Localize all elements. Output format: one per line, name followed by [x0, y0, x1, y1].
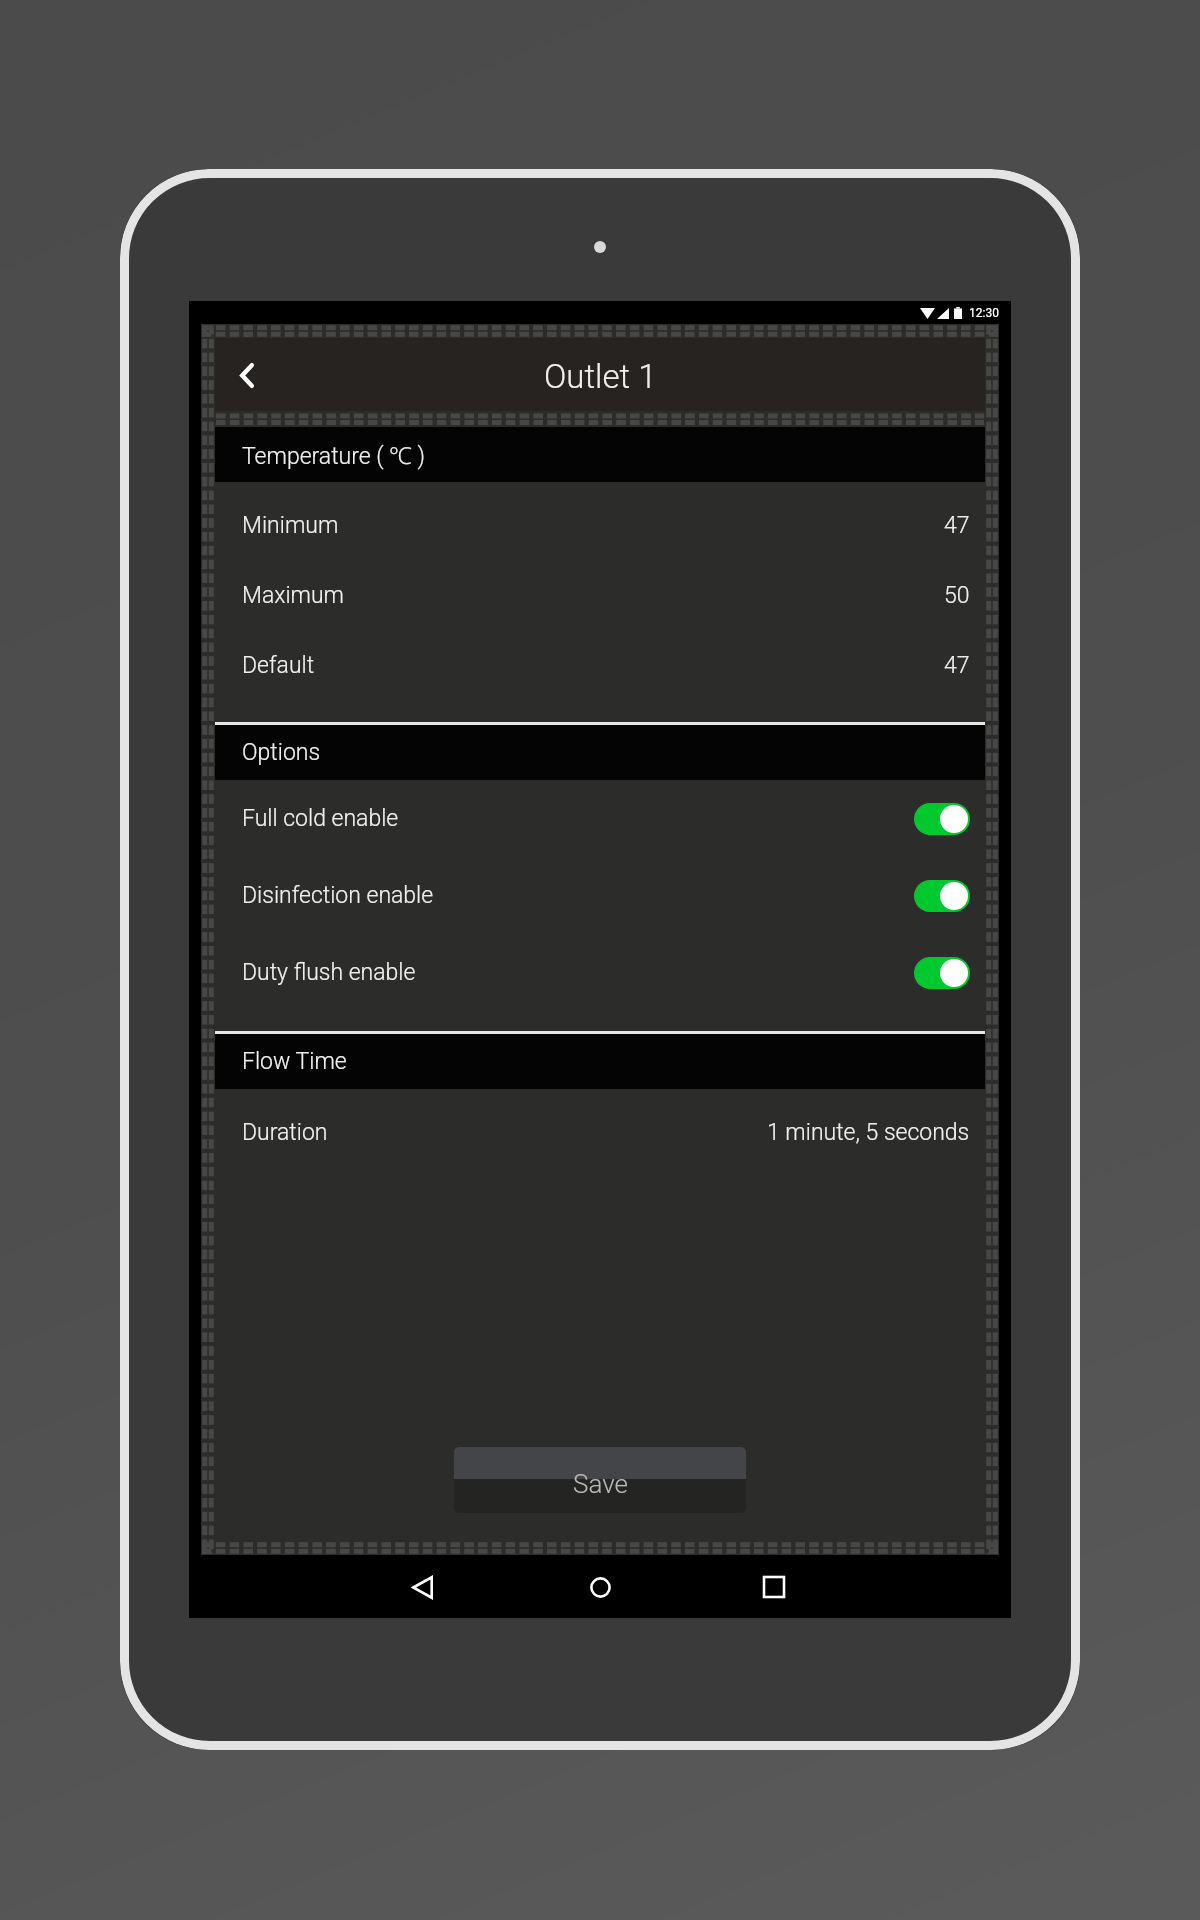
staticText: Default	[242, 652, 315, 679]
staticText: 50	[944, 582, 970, 609]
button[interactable]: Home	[572, 1559, 628, 1615]
staticText: 1 minute, 5 seconds	[767, 1119, 970, 1146]
button[interactable]: Save	[454, 1447, 746, 1513]
staticText: Save	[573, 1469, 628, 1499]
staticText: Minimum	[242, 512, 339, 539]
staticText: 12:30	[969, 306, 999, 320]
button[interactable]: Full cold enable	[215, 780, 985, 857]
staticText: Full cold enable	[242, 805, 399, 832]
button[interactable]: Back	[215, 338, 985, 411]
button[interactable]: Back	[221, 349, 273, 401]
staticText: 47	[944, 652, 970, 679]
button[interactable]: Duty flush enable	[215, 934, 985, 1011]
staticText: Flow Time	[242, 1048, 347, 1075]
staticText: Outlet 1	[544, 357, 657, 396]
button[interactable]: Back	[394, 1559, 450, 1615]
staticText: Disinfection enable	[242, 882, 434, 909]
button[interactable]: Duration	[215, 1097, 985, 1167]
staticText: Duration	[242, 1119, 328, 1146]
button[interactable]: Default	[215, 630, 985, 700]
staticText: Options	[242, 739, 321, 766]
button[interactable]: Recents	[746, 1559, 802, 1615]
staticText: 47	[944, 512, 970, 539]
staticText: Duty flush enable	[242, 959, 416, 986]
button[interactable]: Maximum	[215, 560, 985, 630]
button[interactable]: Disinfection enable	[215, 857, 985, 934]
button[interactable]: Minimum	[215, 490, 985, 560]
staticText: Maximum	[242, 582, 345, 609]
staticText: Temperature ( ℃ )	[242, 439, 426, 470]
